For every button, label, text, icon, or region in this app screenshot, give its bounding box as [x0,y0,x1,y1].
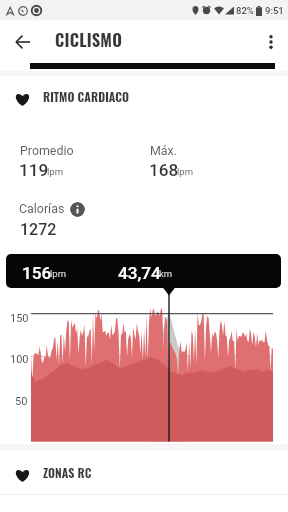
staticText: RITMO CARDIACO [43,88,130,106]
staticText: lpm [177,166,193,177]
staticText: ZONAS RC [43,464,92,482]
staticText: 1272 [20,220,57,239]
staticText: 150 [10,312,29,325]
button[interactable]: RITMO CARDIACO [0,82,288,110]
staticText: CICLISMO [55,27,123,51]
button[interactable]: More options [250,22,288,61]
staticText: 50 [15,395,28,408]
staticText: 43,74 [118,263,161,283]
staticText: Promedio [20,143,74,158]
button[interactable] [6,254,281,288]
button[interactable]: Back [2,22,44,61]
staticText: Calorías [19,201,65,216]
staticText: lpm [50,268,66,279]
staticText: 156 [22,263,52,283]
staticText: Máx. [150,143,177,158]
button[interactable]: ZONAS RC [0,458,288,486]
button[interactable]: Info [70,202,85,217]
staticText: 168 [149,160,179,180]
staticText: lpm [47,166,63,177]
staticText: 100 [10,353,29,366]
staticText: km [159,268,173,279]
staticText: 9:51 [265,5,284,16]
staticText: 119 [19,160,49,180]
staticText: 82% [236,5,254,16]
